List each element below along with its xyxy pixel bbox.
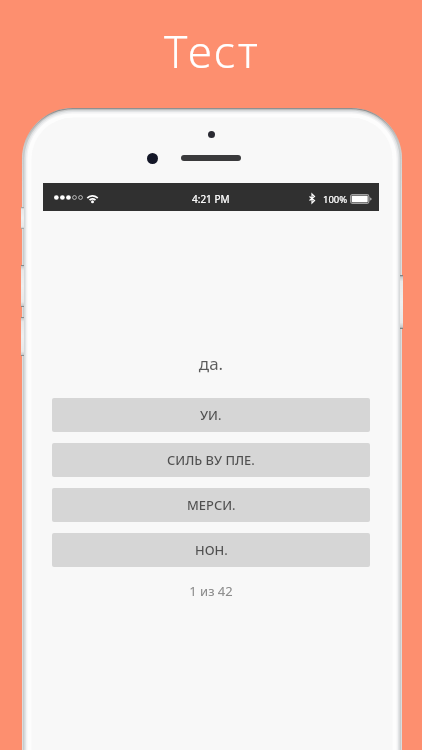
staticText: да. [43, 352, 379, 375]
staticText: 4:21 PM [192, 192, 230, 206]
button[interactable]: СИЛЬ ВУ ПЛЕ. [52, 443, 370, 477]
button[interactable]: УИ. [52, 398, 370, 432]
staticText: 100% [323, 193, 348, 206]
staticText: СИЛЬ ВУ ПЛЕ. [167, 451, 255, 469]
staticText: УИ. [200, 406, 222, 424]
staticText: 1 из 42 [43, 582, 379, 600]
staticText: МЕРСИ. [187, 496, 236, 514]
staticText: Тест [164, 21, 260, 79]
staticText: НОН. [195, 541, 228, 559]
button[interactable]: НОН. [52, 533, 370, 567]
button[interactable]: МЕРСИ. [52, 488, 370, 522]
